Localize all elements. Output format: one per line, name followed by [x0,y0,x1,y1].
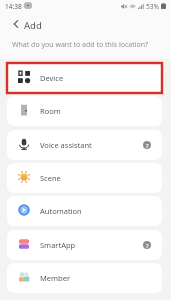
button[interactable]: Room [7,96,162,126]
button[interactable]: Device [7,63,162,93]
button[interactable]: Back [6,14,26,34]
staticText: ? [146,142,149,149]
button[interactable]: Automation [7,196,162,226]
button[interactable]: Scene [7,163,162,193]
staticText: ? [146,242,149,249]
button[interactable]: Voice assistant [7,130,162,160]
staticText: Automation [40,206,82,216]
staticText: Room [40,106,61,116]
staticText: 53% [146,2,159,11]
button[interactable]: Member [7,263,162,293]
staticText: Device [40,73,64,83]
staticText: What do you want to add to this location… [12,40,149,50]
staticText: Scene [40,173,61,183]
staticText: Add [24,19,42,32]
staticText: Member [40,273,70,283]
staticText: SmartApp [40,240,76,250]
button[interactable]: SmartApp [7,230,162,260]
button[interactable]: Help [141,139,153,151]
staticText: 14:38 [5,2,22,11]
button[interactable]: Help [141,239,153,251]
staticText: Voice assistant [40,140,92,150]
